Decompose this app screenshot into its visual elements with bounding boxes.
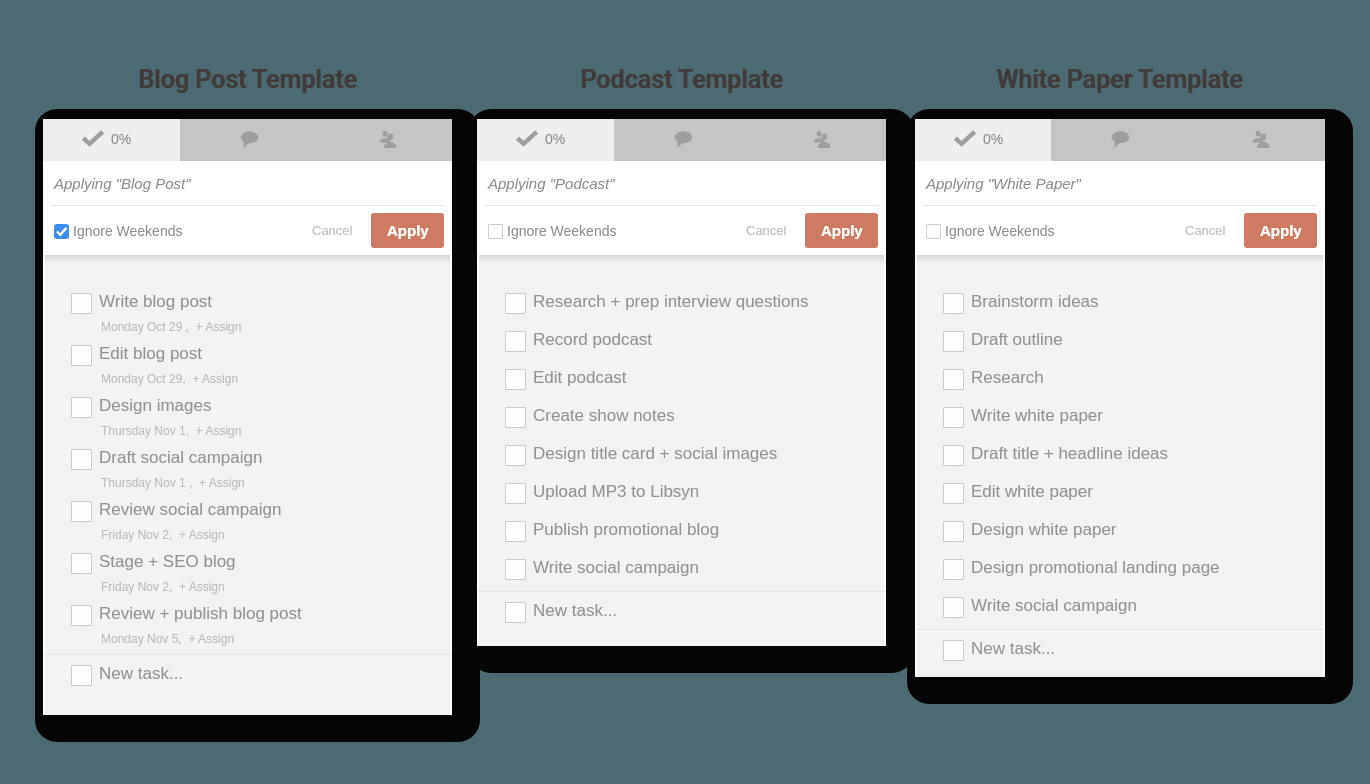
button[interactable]: Apply <box>1244 213 1317 248</box>
button[interactable]: Create show notes <box>477 407 886 445</box>
button[interactable]: Design images <box>43 397 452 449</box>
staticText: Upload MP3 to Libsyn <box>533 482 700 501</box>
staticText: Review social campaign <box>99 500 282 519</box>
button[interactable]: Comments <box>1051 119 1188 161</box>
staticText: Apply <box>387 222 429 239</box>
staticText: White Paper Template <box>997 65 1244 94</box>
staticText: Design promotional landing page <box>971 558 1220 577</box>
staticText: Friday Nov 2, + Assign <box>101 580 225 593</box>
staticText: Design images <box>99 396 212 415</box>
staticText: Edit blog post <box>99 344 203 363</box>
staticText: Blog Post Template <box>138 65 357 94</box>
staticText: Write white paper <box>971 406 1103 425</box>
staticText: Monday Oct 29, + Assign <box>101 372 239 385</box>
button[interactable]: 0% <box>915 119 1051 161</box>
staticText: 0% <box>111 131 132 147</box>
staticText: Write blog post <box>99 292 213 311</box>
staticText: Ignore Weekends <box>945 223 1055 239</box>
button[interactable]: Draft outline <box>915 331 1325 369</box>
button[interactable]: Comments <box>614 119 750 161</box>
button[interactable]: 0% <box>43 119 180 161</box>
staticText: Create show notes <box>533 406 675 425</box>
staticText: Thursday Nov 1, + Assign <box>101 424 242 437</box>
button[interactable]: Cancel <box>1175 215 1236 246</box>
staticText: Write social campaign <box>533 558 699 577</box>
staticText: Cancel <box>1185 223 1226 238</box>
staticText: Monday Nov 5, + Assign <box>101 632 235 645</box>
button[interactable]: Review social campaign <box>43 501 452 553</box>
staticText: Draft outline <box>971 330 1063 349</box>
button[interactable]: 0% <box>477 119 614 161</box>
button[interactable]: New task... <box>43 665 452 703</box>
staticText: Thursday Nov 1 , + Assign <box>101 476 245 489</box>
staticText: Apply <box>1260 222 1302 239</box>
staticText: Research <box>971 368 1044 387</box>
staticText: Blog Post Template <box>139 65 358 94</box>
staticText: Friday Nov 2, + Assign <box>101 528 225 541</box>
button[interactable]: Write social campaign <box>915 597 1325 635</box>
button[interactable]: Members <box>316 119 452 161</box>
staticText: Edit podcast <box>533 368 627 387</box>
button[interactable]: Design promotional landing page <box>915 559 1325 597</box>
staticText: Publish promotional blog <box>533 520 720 539</box>
button[interactable]: Comments <box>180 119 316 161</box>
staticText: Research + prep interview questions <box>533 292 809 311</box>
button[interactable]: Draft title + headline ideas <box>915 445 1325 483</box>
button[interactable]: Publish promotional blog <box>477 521 886 559</box>
staticText: Design title card + social images <box>533 444 778 463</box>
button[interactable]: Stage + SEO blog <box>43 553 452 605</box>
staticText: Design white paper <box>971 520 1117 539</box>
staticText: Ignore Weekends <box>73 223 183 239</box>
button[interactable]: Members <box>750 119 886 161</box>
staticText: Podcast Template <box>581 65 784 94</box>
button[interactable]: Ignore Weekends <box>926 223 1055 239</box>
button[interactable]: Cancel <box>302 215 363 246</box>
staticText: Brainstorm ideas <box>971 292 1099 311</box>
button[interactable]: Ignore Weekends <box>488 223 617 239</box>
staticText: New task... <box>99 664 184 683</box>
button[interactable]: New task... <box>477 602 886 640</box>
staticText: 0% <box>983 131 1004 147</box>
staticText: Ignore Weekends <box>507 223 617 239</box>
button[interactable]: Edit podcast <box>477 369 886 407</box>
button[interactable]: Members <box>1188 119 1325 161</box>
button[interactable]: Draft social campaign <box>43 449 452 501</box>
staticText: New task... <box>971 639 1056 658</box>
button[interactable]: Ignore Weekends <box>54 223 183 239</box>
staticText: Edit white paper <box>971 482 1093 501</box>
button[interactable]: Write blog post <box>43 293 452 345</box>
staticText: Podcast Template <box>580 65 783 94</box>
button[interactable]: Research + prep interview questions <box>477 293 886 331</box>
button[interactable]: Apply <box>371 213 444 248</box>
staticText: Stage + SEO blog <box>99 552 236 571</box>
button[interactable]: Write social campaign <box>477 559 886 597</box>
button[interactable]: Design white paper <box>915 521 1325 559</box>
button[interactable]: Cancel <box>736 215 797 246</box>
staticText: Record podcast <box>533 330 653 349</box>
staticText: Monday Oct 29 , + Assign <box>101 320 242 333</box>
button[interactable]: Write white paper <box>915 407 1325 445</box>
staticText: Apply <box>821 222 863 239</box>
button[interactable]: Edit blog post <box>43 345 452 397</box>
button[interactable]: Design title card + social images <box>477 445 886 483</box>
staticText: 0% <box>545 131 566 147</box>
staticText: Applying "White Paper" <box>926 175 1081 192</box>
staticText: Review + publish blog post <box>99 604 302 623</box>
staticText: Cancel <box>746 223 787 238</box>
button[interactable]: Edit white paper <box>915 483 1325 521</box>
staticText: Draft title + headline ideas <box>971 444 1169 463</box>
button[interactable]: New task... <box>915 640 1325 678</box>
button[interactable]: Apply <box>805 213 878 248</box>
button[interactable]: Review + publish blog post <box>43 605 452 657</box>
button[interactable]: Record podcast <box>477 331 886 369</box>
staticText: Applying "Podcast" <box>488 175 615 192</box>
button[interactable]: Research <box>915 369 1325 407</box>
button[interactable]: Brainstorm ideas <box>915 293 1325 331</box>
staticText: Draft social campaign <box>99 448 263 467</box>
button[interactable]: Upload MP3 to Libsyn <box>477 483 886 521</box>
staticText: White Paper Template <box>996 65 1243 94</box>
staticText: Cancel <box>312 223 353 238</box>
staticText: Write social campaign <box>971 596 1137 615</box>
staticText: Applying "Blog Post" <box>54 175 191 192</box>
staticText: New task... <box>533 601 618 620</box>
